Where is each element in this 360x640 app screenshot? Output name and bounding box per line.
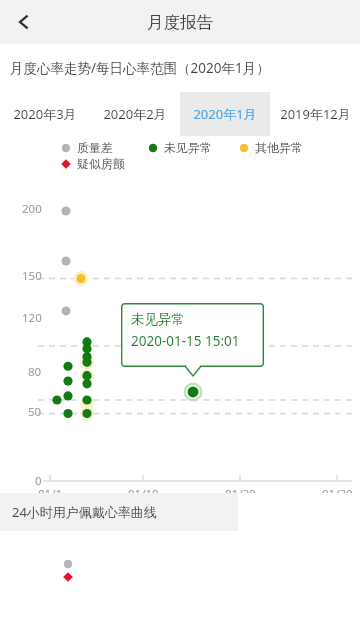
button[interactable]: 未见异常 — [121, 303, 264, 367]
button[interactable]: Back — [0, 0, 48, 44]
staticText: 2019年12月 — [280, 105, 351, 123]
staticText: 01/20 — [225, 486, 256, 502]
button[interactable]: 2019年12月 — [270, 92, 360, 136]
staticText: 50 — [28, 404, 42, 420]
staticText: 2020年3月 — [13, 105, 77, 123]
staticText: 2020-01-15 15:01 — [131, 332, 240, 350]
staticText: 月度心率走势/每日心率范围（2020年1月） — [10, 59, 270, 77]
staticText: 2020年1月 — [193, 105, 257, 123]
staticText: 其他异常 — [255, 140, 303, 155]
staticText: 未见异常 — [164, 140, 212, 155]
button[interactable]: 2020年2月 — [90, 92, 180, 136]
staticText: 未见异常 — [131, 311, 185, 328]
staticText: 01/1 — [38, 486, 63, 502]
staticText: 200 — [22, 201, 42, 217]
button[interactable]: 2020年3月 — [0, 92, 90, 136]
staticText: 01/30 — [322, 486, 353, 502]
staticText: 2020年2月 — [103, 105, 167, 123]
staticText: 质量差 — [77, 140, 113, 155]
staticText: 疑似房颤 — [77, 156, 125, 171]
staticText: 01/10 — [128, 486, 159, 502]
staticText: 0 — [35, 473, 42, 489]
staticText: 80 — [28, 364, 42, 380]
staticText: 24小时用户佩戴心率曲线 — [12, 503, 157, 521]
staticText: 月度报告 — [147, 12, 213, 33]
staticText: 120 — [22, 310, 42, 326]
staticText: 150 — [22, 268, 42, 284]
button[interactable]: 2020年1月 — [180, 92, 270, 136]
